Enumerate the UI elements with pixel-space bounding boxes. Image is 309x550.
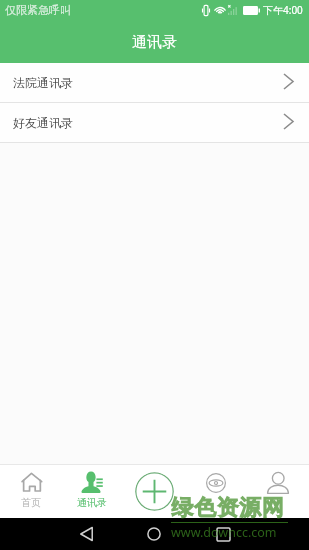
- staticText: 仅限紧急呼叫: [5, 3, 71, 17]
- staticText: 绿色资源网: [171, 494, 284, 522]
- staticText: 法院通讯录: [13, 75, 73, 90]
- staticText: www.downcc.com: [171, 524, 277, 541]
- button[interactable]: 首页: [0, 465, 61, 518]
- button[interactable]: Back: [69, 518, 103, 550]
- button[interactable]: Home: [137, 518, 171, 550]
- staticText: 通讯录: [77, 496, 107, 509]
- staticText: 首页: [21, 496, 41, 509]
- button[interactable]: 法院通讯录: [0, 63, 309, 103]
- button[interactable]: Recent apps: [206, 518, 240, 550]
- button[interactable]: Discover: [185, 465, 247, 518]
- staticText: 通讯录: [132, 33, 177, 52]
- staticText: 好友通讯录: [13, 115, 73, 130]
- button[interactable]: Add: [123, 465, 185, 518]
- button[interactable]: 通讯录: [61, 465, 123, 518]
- button[interactable]: 好友通讯录: [0, 103, 309, 143]
- button[interactable]: Profile: [247, 465, 309, 518]
- staticText: 下午4:00: [263, 3, 303, 17]
